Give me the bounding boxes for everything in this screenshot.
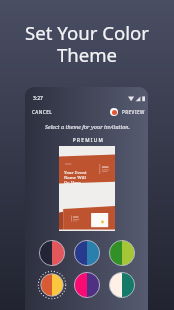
button[interactable]: Blue theme [71,237,103,269]
button[interactable]: Pink purple theme [71,269,103,301]
staticText: Set Your Color Theme [0,20,174,68]
button[interactable]: Orange theme [36,269,68,301]
staticText: Select a theme for your invitation. [26,123,148,130]
button[interactable]: Teal theme [106,269,138,301]
button[interactable]: Invitation preview [59,146,115,231]
button[interactable]: CANCEL [32,107,54,117]
staticText: 3:27 [33,95,43,102]
button[interactable]: Navy coral theme [36,237,68,269]
button[interactable]: PREVIEW [110,107,145,117]
other: Status icons [128,96,146,102]
staticText: PREMIUM [27,137,148,143]
staticText: CANCEL [32,109,53,115]
button[interactable]: Green theme [106,237,138,269]
staticText: PREVIEW [122,109,145,115]
staticText: Your Event Name Will Go Here [64,169,87,185]
